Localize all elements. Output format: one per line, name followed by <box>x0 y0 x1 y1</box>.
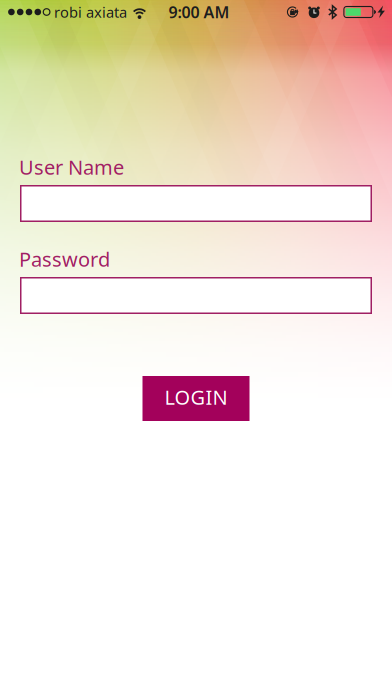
staticText: robi axiata <box>54 2 127 22</box>
staticText: Password <box>19 246 110 272</box>
staticText: User Name <box>19 154 124 180</box>
staticText: LOGIN <box>164 384 227 410</box>
staticText: 9:00 AM <box>168 1 229 23</box>
button[interactable]: LOGIN <box>142 376 249 421</box>
